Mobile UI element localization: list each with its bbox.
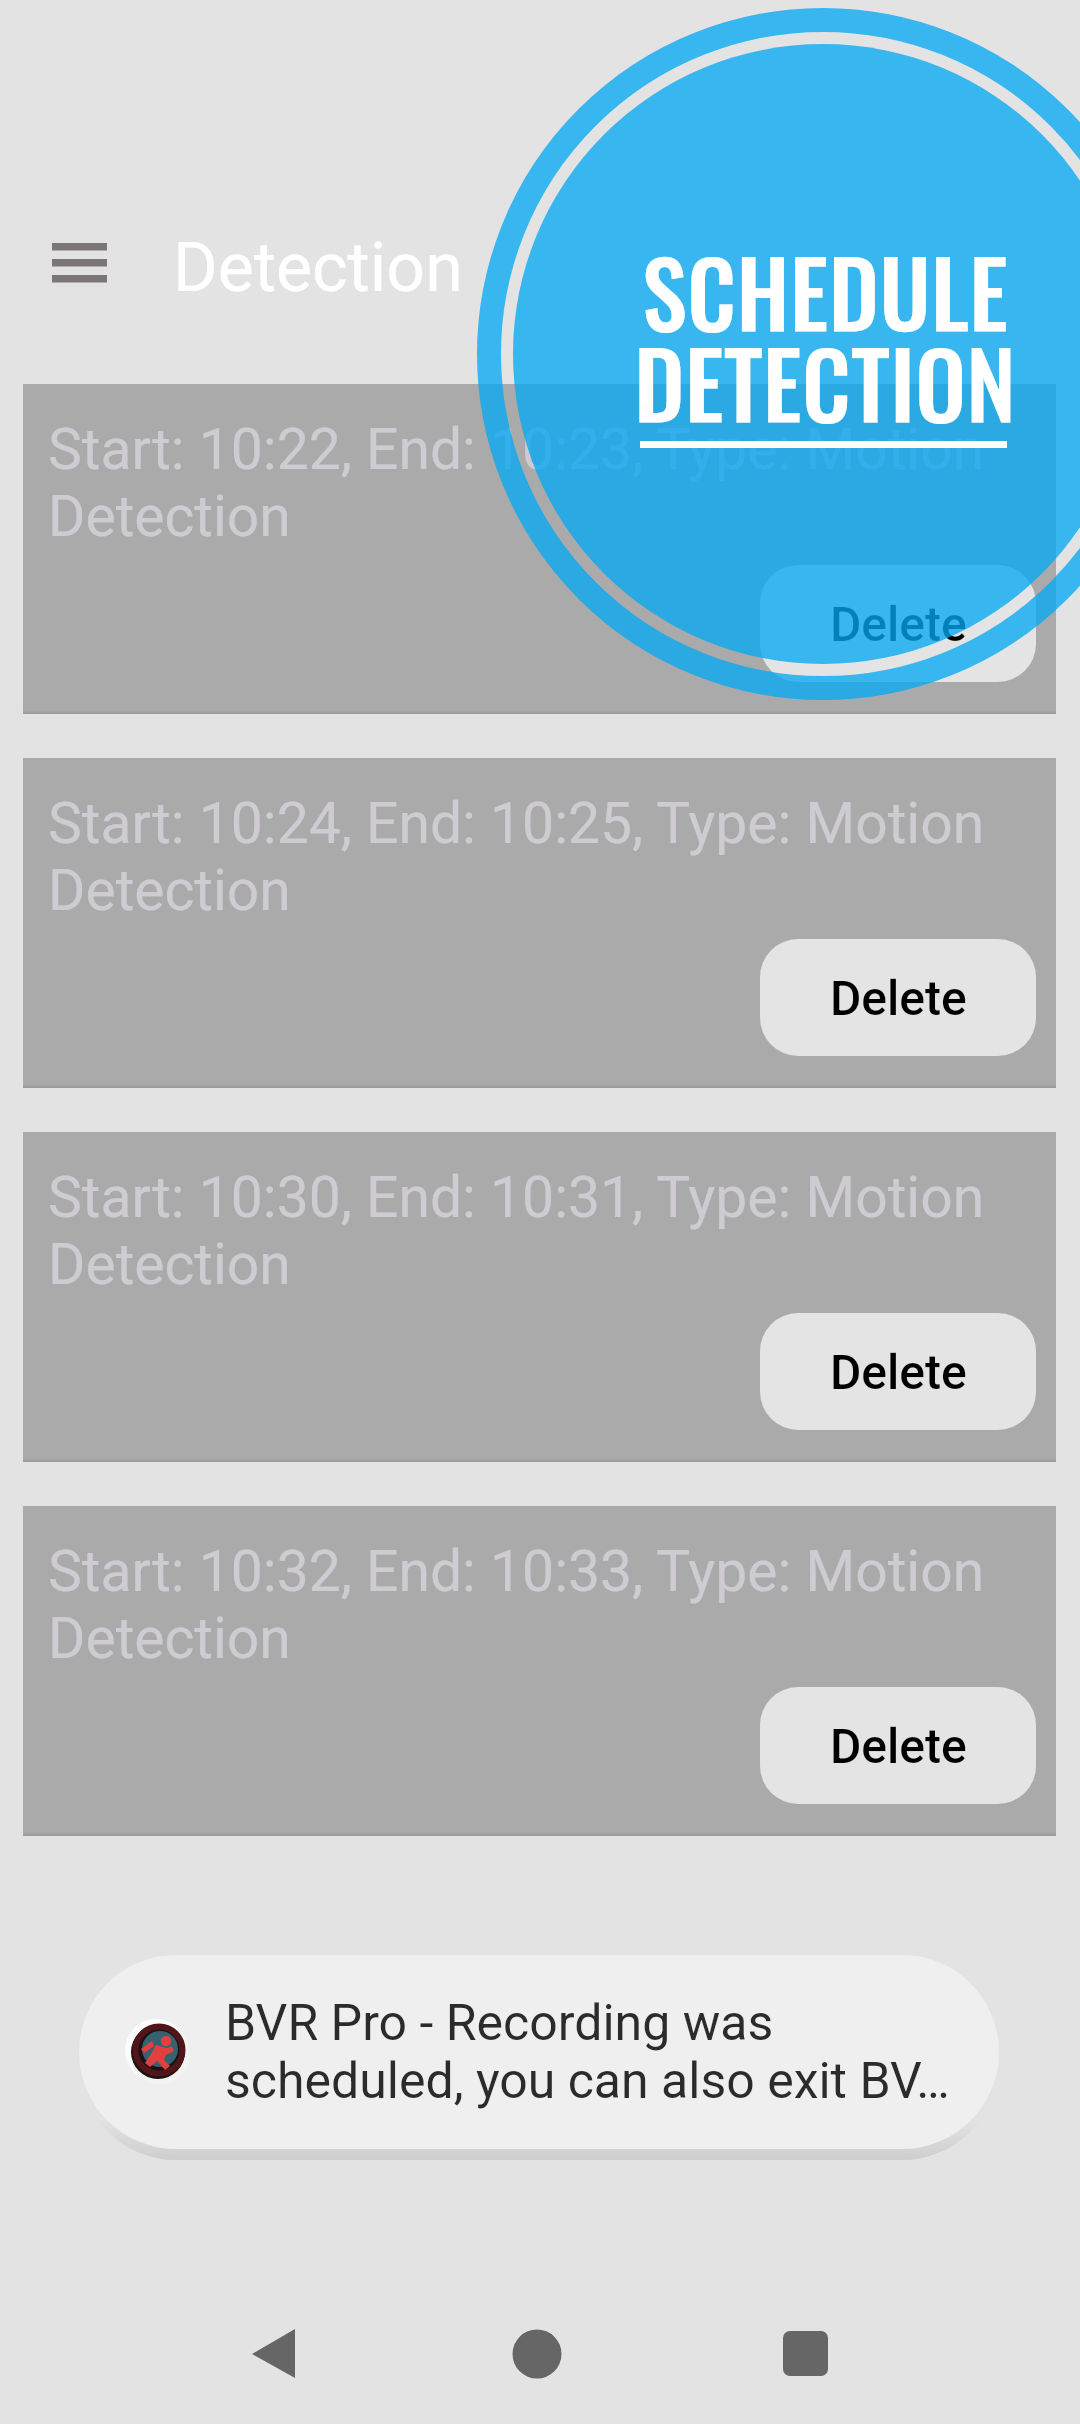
button[interactable]: Back bbox=[232, 2319, 316, 2403]
staticText: Detection bbox=[173, 228, 463, 308]
button[interactable]: Start: 10:24, End: 10:25, Type: Motion D… bbox=[23, 758, 1056, 1088]
button[interactable]: Open navigation menu bbox=[20, 198, 140, 330]
staticText: Delete bbox=[830, 1344, 967, 1400]
button[interactable]: Delete bbox=[760, 565, 1036, 682]
button[interactable]: BVR Pro - Recording was scheduled, you c… bbox=[79, 1955, 999, 2149]
button[interactable]: Home bbox=[495, 2319, 579, 2403]
button[interactable]: Recent apps bbox=[763, 2319, 847, 2403]
staticText: Delete bbox=[830, 596, 967, 652]
staticText: Delete bbox=[830, 1718, 967, 1774]
button[interactable]: Schedule Detection bbox=[477, 8, 1080, 700]
staticText: Start: 10:32, End: 10:33, Type: Motion D… bbox=[48, 1538, 1016, 1672]
button[interactable]: Start: 10:30, End: 10:31, Type: Motion D… bbox=[23, 1132, 1056, 1462]
staticText: Start: 10:22, End: 10:23, Type: Motion D… bbox=[48, 416, 1016, 550]
button[interactable]: Delete bbox=[760, 939, 1036, 1056]
staticText: Start: 10:30, End: 10:31, Type: Motion D… bbox=[48, 1164, 1016, 1298]
staticText: DETECTION bbox=[479, 314, 1080, 449]
staticText: Delete bbox=[830, 970, 967, 1026]
button[interactable]: Delete bbox=[760, 1313, 1036, 1430]
staticText: SCHEDULE bbox=[479, 223, 1080, 358]
button[interactable]: Start: 10:32, End: 10:33, Type: Motion D… bbox=[23, 1506, 1056, 1836]
staticText: Start: 10:24, End: 10:25, Type: Motion D… bbox=[48, 790, 1016, 924]
button[interactable]: Start: 10:22, End: 10:23, Type: Motion D… bbox=[23, 384, 1056, 714]
button[interactable]: Delete bbox=[760, 1687, 1036, 1804]
staticText: BVR Pro - Recording was scheduled, you c… bbox=[225, 1994, 950, 2110]
